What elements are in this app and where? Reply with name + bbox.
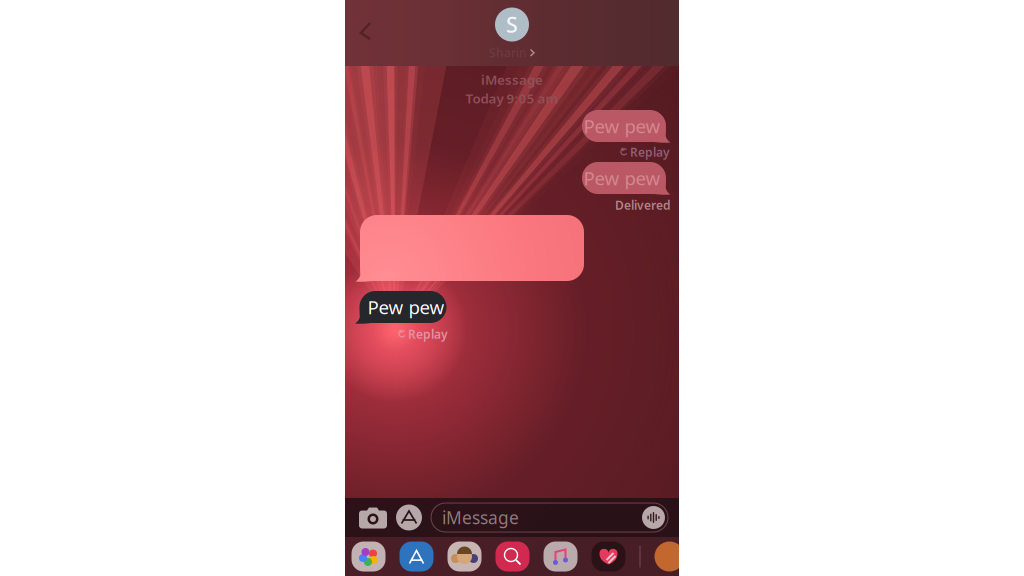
staticText: Replay [630,144,670,160]
staticText: Pew pew [367,295,444,319]
staticText: Today 9:05 am [465,89,558,107]
staticText: Pew pew [583,114,660,138]
button[interactable]: S [489,5,535,60]
button[interactable]: Camera [359,506,387,528]
button[interactable]: More apps [654,541,684,571]
button[interactable]: Record audio message [642,506,665,529]
staticText: iMessage [481,71,543,88]
button[interactable]: Memoji [447,541,481,571]
staticText: Replay [408,326,448,342]
staticText: Sharin [489,44,527,60]
button[interactable]: Photos [351,541,385,571]
button[interactable]: App Store [396,504,422,530]
button[interactable]: Digital Touch [591,541,625,571]
button[interactable]: Images [495,541,529,571]
staticText: Delivered [615,197,671,213]
staticText: Pew pew [583,166,660,190]
button[interactable]: App Store [399,541,433,571]
staticText: S [506,10,518,39]
staticText: iMessage [442,506,519,529]
button[interactable]: Back [345,16,379,50]
button[interactable]: Music [543,541,577,571]
